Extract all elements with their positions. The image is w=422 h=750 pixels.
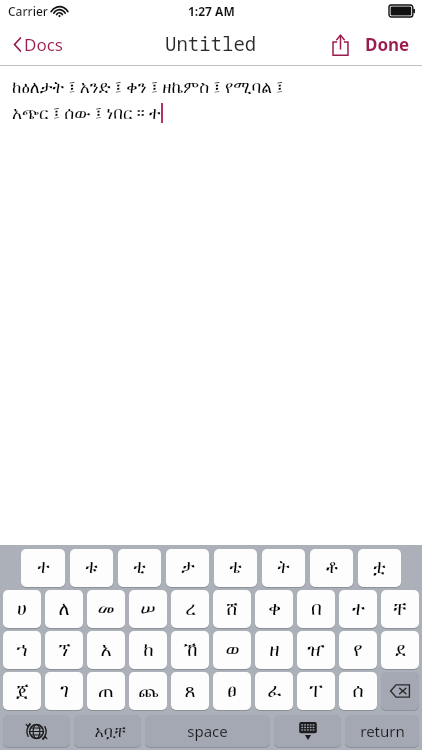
- button[interactable]: ሸ: [213, 590, 251, 628]
- button[interactable]: አቧቸ: [74, 715, 141, 747]
- button[interactable]: ሠ: [129, 590, 167, 628]
- button[interactable]: ቶ: [310, 549, 353, 587]
- button[interactable]: ዘ: [255, 631, 293, 669]
- button[interactable]: ጀ: [3, 672, 41, 710]
- button[interactable]: ሰ: [339, 672, 377, 710]
- button[interactable]: ዠ: [297, 631, 335, 669]
- button[interactable]: ወ: [213, 631, 251, 669]
- staticText: ቴ: [229, 559, 242, 577]
- staticText: space: [187, 721, 228, 741]
- button[interactable]: ቴ: [214, 549, 257, 587]
- button[interactable]: ፐ: [297, 672, 335, 710]
- button[interactable]: ከ: [129, 631, 167, 669]
- staticText: ወ: [225, 641, 240, 660]
- staticText: ፐ: [309, 682, 323, 701]
- staticText: ሰ: [352, 682, 364, 701]
- staticText: ለ: [58, 600, 70, 619]
- button[interactable]: Hide keyboard: [274, 715, 341, 747]
- button[interactable]: ቱ: [70, 549, 113, 587]
- button[interactable]: space: [145, 715, 270, 747]
- button[interactable]: ቀ: [255, 590, 293, 628]
- staticText: 1:27 AM: [188, 3, 235, 19]
- staticText: ጨ: [138, 682, 159, 701]
- button[interactable]: ሀ: [3, 590, 41, 628]
- staticText: ሸ: [226, 600, 238, 619]
- staticText: ቀ: [268, 600, 281, 619]
- button[interactable]: ት: [262, 549, 305, 587]
- staticText: ኘ: [58, 641, 71, 660]
- staticText: ፈ: [267, 682, 282, 701]
- staticText: ቱ: [85, 559, 98, 577]
- button[interactable]: return: [345, 715, 419, 747]
- button[interactable]: የ: [339, 631, 377, 669]
- staticText: ቶ: [326, 559, 338, 577]
- staticText: ቷ: [373, 559, 386, 577]
- button[interactable]: ተ: [339, 590, 377, 628]
- staticText: ፀ: [227, 682, 237, 701]
- button[interactable]: ቲ: [118, 549, 161, 587]
- staticText: return: [360, 721, 405, 741]
- button[interactable]: ጨ: [129, 672, 167, 710]
- button[interactable]: አ: [87, 631, 125, 669]
- staticText: ዘ: [269, 641, 280, 660]
- staticText: Done: [365, 33, 410, 56]
- button[interactable]: ረ: [171, 590, 209, 628]
- button[interactable]: Share: [326, 31, 355, 59]
- staticText: Untitled: [165, 31, 257, 57]
- button[interactable]: ፀ: [213, 672, 251, 710]
- staticText: ገ: [60, 682, 69, 701]
- staticText: ታ: [181, 559, 195, 577]
- staticText: አ: [100, 641, 112, 660]
- staticText: አጭር ፤ ሰው ፤ ነበር ። ተ: [12, 101, 161, 124]
- staticText: ረ: [185, 600, 196, 619]
- staticText: Docs: [24, 33, 63, 56]
- staticText: ዠ: [307, 641, 325, 660]
- button[interactable]: ጸ: [171, 672, 209, 710]
- button[interactable]: ገ: [45, 672, 83, 710]
- button[interactable]: Switch keyboard language: [3, 715, 70, 747]
- button[interactable]: ኸ: [171, 631, 209, 669]
- staticText: ከዕለታት ፤ አንድ ፤ ቀን ፤ ዘኬምስ ፤ የሚባል ፤: [12, 75, 284, 98]
- button[interactable]: Backspace: [381, 672, 419, 710]
- staticText: ደ: [395, 641, 406, 660]
- staticText: ኸ: [183, 641, 198, 660]
- staticText: ት: [277, 559, 290, 577]
- staticText: ተ: [352, 600, 365, 619]
- staticText: ጸ: [184, 682, 196, 701]
- staticText: ተ: [37, 559, 50, 577]
- staticText: የ: [353, 641, 363, 660]
- staticText: ቲ: [133, 559, 146, 577]
- button[interactable]: ደ: [381, 631, 419, 669]
- staticText: ቸ: [393, 600, 407, 619]
- staticText: ከ: [143, 641, 154, 660]
- staticText: Carrier: [8, 3, 48, 19]
- staticText: በ: [311, 600, 322, 619]
- button[interactable]: Done: [361, 29, 414, 60]
- button[interactable]: ተ: [21, 549, 65, 587]
- staticText: መ: [97, 600, 115, 619]
- button[interactable]: ለ: [45, 590, 83, 628]
- button[interactable]: ታ: [166, 549, 209, 587]
- button[interactable]: ጠ: [87, 672, 125, 710]
- staticText: ሀ: [17, 600, 27, 619]
- staticText: ጠ: [98, 682, 114, 701]
- staticText: ኀ: [16, 641, 28, 660]
- button[interactable]: ኘ: [45, 631, 83, 669]
- button[interactable]: ኀ: [3, 631, 41, 669]
- staticText: ሠ: [140, 600, 156, 619]
- button[interactable]: መ: [87, 590, 125, 628]
- button[interactable]: ፈ: [255, 672, 293, 710]
- button[interactable]: ቷ: [358, 549, 401, 587]
- button[interactable]: Docs: [8, 29, 69, 60]
- button[interactable]: ቸ: [381, 590, 419, 628]
- staticText: ጀ: [16, 682, 29, 701]
- staticText: አቧቸ: [90, 720, 126, 742]
- button[interactable]: በ: [297, 590, 335, 628]
